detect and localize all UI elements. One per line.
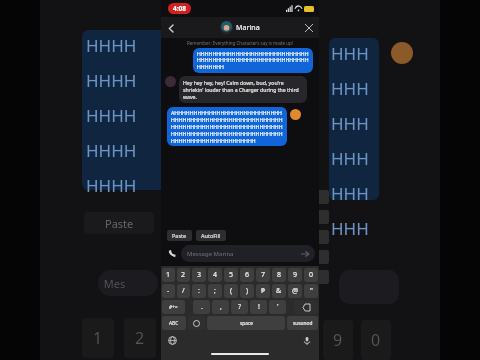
button[interactable]: space <box>207 316 285 330</box>
staticText: HHHH <box>86 104 137 127</box>
button[interactable]: #+= <box>162 300 185 314</box>
button[interactable]: Options <box>302 21 316 35</box>
button[interactable]: ? <box>231 300 248 314</box>
staticText: AutoFill <box>201 232 221 239</box>
staticText: 0 <box>309 270 314 280</box>
staticText: susunod <box>293 320 313 327</box>
staticText: HHHH <box>86 209 137 232</box>
button[interactable]: : <box>192 284 206 298</box>
staticText: 2 <box>181 270 186 280</box>
staticText: HHH <box>331 147 369 170</box>
button[interactable]: HHHHHHHHHHHHHHHHHHHHHHHHHHHHHHHHHHHHHHHH… <box>193 48 313 73</box>
staticText: 2 <box>135 327 145 349</box>
button[interactable]: 5 <box>224 268 238 282</box>
button[interactable]: ' <box>269 300 286 314</box>
staticText: Mes <box>98 276 126 291</box>
button[interactable]: @ <box>288 284 302 298</box>
button[interactable]: Backspace <box>294 300 318 314</box>
staticText: HHH <box>331 77 369 100</box>
staticText: Paste <box>105 216 134 231</box>
staticText: : <box>198 286 200 296</box>
staticText: Hey hey hey, hey! Calm down, bud, you're… <box>183 79 303 100</box>
button[interactable]: Change language <box>167 335 178 346</box>
button[interactable]: AHHHHHHHHHHHHHHHHHHHHHHHHHHHHHHHHHHHHHHH… <box>167 107 287 146</box>
staticText: HHH <box>331 217 369 240</box>
button[interactable]: . <box>193 300 210 314</box>
staticText: 0 <box>371 329 381 351</box>
button[interactable]: Message Marina <box>181 245 315 262</box>
staticText: AHHHHHHHHHHHHHHHHHHHHHHHHHHHHHHHHHHHHHHH… <box>171 109 283 144</box>
staticText: " <box>310 286 313 296</box>
button[interactable]: 8 <box>272 268 286 282</box>
staticText: HHHHHHHHHHHHHHHHHHHHHHHHHHHHHHHHHHHHHHHH… <box>197 50 309 71</box>
button[interactable]: 4 <box>208 268 222 282</box>
button[interactable]: ₱ <box>256 284 270 298</box>
button[interactable]: 3 <box>192 268 206 282</box>
button[interactable]: Voice input <box>301 335 312 346</box>
staticText: #+= <box>169 304 178 311</box>
staticText: HHHH <box>86 34 137 57</box>
staticText: ! <box>258 302 260 312</box>
staticText: HHH <box>331 182 369 205</box>
staticText: 5 <box>229 270 234 280</box>
staticText: HHHH <box>86 139 137 162</box>
staticText: ' <box>277 302 279 312</box>
staticText: HHH <box>331 42 369 65</box>
staticText: 7 <box>261 270 266 280</box>
button[interactable]: 9 <box>288 268 302 282</box>
staticText: ( <box>230 286 233 296</box>
staticText: ₱ <box>261 286 266 296</box>
staticText: 4:08 <box>173 4 186 13</box>
staticText: Remember: Everything Characters say is m… <box>167 40 313 46</box>
staticText: - <box>167 286 170 296</box>
button[interactable]: ) <box>240 284 254 298</box>
button[interactable]: / <box>177 284 190 298</box>
staticText: ) <box>246 286 249 296</box>
button[interactable]: Call <box>165 247 179 261</box>
staticText: 6 <box>245 270 250 280</box>
button[interactable]: 0 <box>304 268 318 282</box>
button[interactable]: susunod <box>287 316 318 330</box>
button[interactable]: 6 <box>240 268 254 282</box>
staticText: 3 <box>197 270 202 280</box>
staticText: 9 <box>293 270 298 280</box>
button[interactable]: " <box>304 284 318 298</box>
staticText: , <box>220 302 222 312</box>
button[interactable]: Emoji <box>188 316 205 330</box>
button[interactable]: Marina <box>220 21 260 34</box>
staticText: @ <box>292 286 299 296</box>
button[interactable]: ( <box>224 284 238 298</box>
button[interactable]: Paste <box>167 230 192 241</box>
button[interactable]: ABC <box>162 316 186 330</box>
staticText: 8 <box>277 270 282 280</box>
staticText: ? <box>238 302 242 312</box>
button[interactable]: , <box>212 300 229 314</box>
staticText: Message Marina <box>187 250 301 258</box>
staticText: space <box>240 320 253 327</box>
staticText: HHHH <box>86 174 137 197</box>
button[interactable]: 7 <box>256 268 270 282</box>
button[interactable]: 1 <box>162 268 175 282</box>
button[interactable]: & <box>272 284 286 298</box>
button[interactable]: Hey hey hey, hey! Calm down, bud, you're… <box>179 76 307 103</box>
staticText: ; <box>214 286 216 296</box>
staticText: HHH <box>331 112 369 135</box>
staticText: / <box>182 286 185 296</box>
staticText: Paste <box>172 232 187 239</box>
staticText: 1 <box>93 327 103 349</box>
staticText: Marina <box>236 23 260 33</box>
staticText: ABC <box>169 320 179 327</box>
button[interactable]: Back <box>163 20 179 36</box>
button[interactable]: 2 <box>177 268 190 282</box>
button[interactable]: - <box>162 284 175 298</box>
button[interactable]: ! <box>250 300 267 314</box>
staticText: 4 <box>213 270 218 280</box>
staticText: 1 <box>166 270 171 280</box>
staticText: . <box>201 302 203 312</box>
staticText: & <box>276 286 282 296</box>
staticText: HHHH <box>86 69 137 92</box>
button[interactable]: AutoFill <box>196 230 226 241</box>
staticText: 9 <box>333 329 343 351</box>
button[interactable]: ; <box>208 284 222 298</box>
